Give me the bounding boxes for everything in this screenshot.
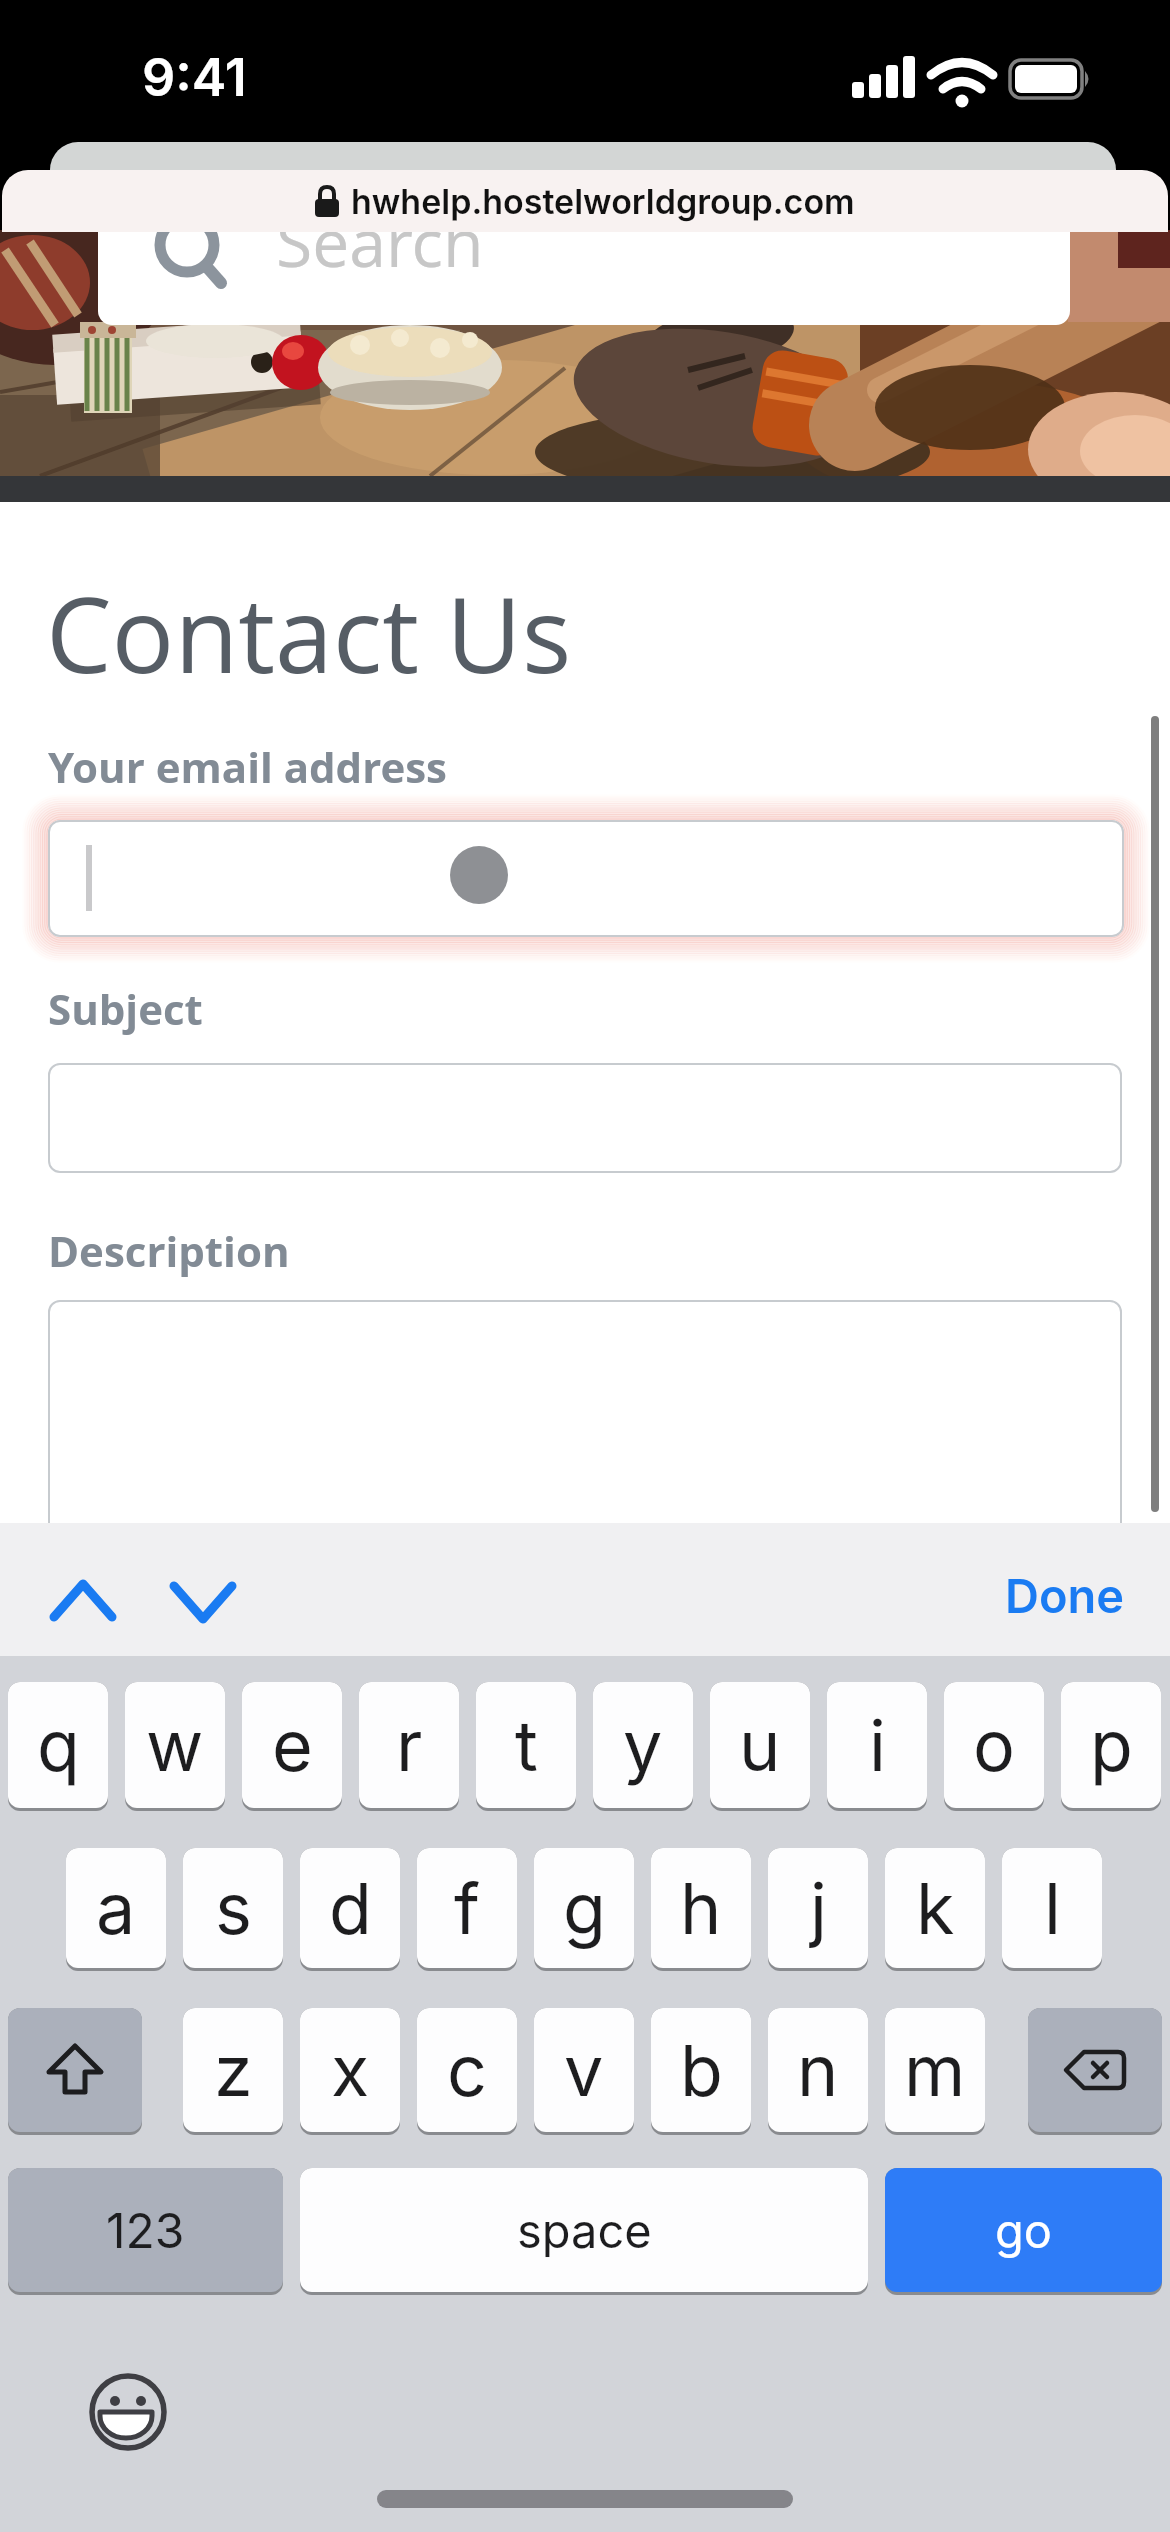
button[interactable]: z	[183, 2008, 283, 2132]
button[interactable]: Done	[990, 1560, 1140, 1630]
staticText: u	[739, 1703, 781, 1788]
staticText: z	[214, 2028, 253, 2113]
button[interactable]: t	[476, 1682, 576, 1808]
button[interactable]: q	[8, 1682, 108, 1808]
button[interactable]	[1028, 2008, 1162, 2132]
staticText: x	[331, 2028, 370, 2113]
staticText: 123	[106, 2201, 185, 2259]
button[interactable]: m	[885, 2008, 985, 2132]
staticText: Your email address	[48, 738, 447, 795]
button[interactable]: k	[885, 1848, 985, 1968]
button[interactable]	[48, 1063, 1122, 1173]
button[interactable]	[80, 2364, 176, 2460]
staticText: i	[869, 1703, 886, 1788]
staticText: r	[396, 1703, 423, 1788]
staticText: c	[447, 2028, 487, 2113]
staticText: y	[623, 1703, 663, 1788]
staticText: f	[454, 1866, 480, 1951]
staticText: o	[973, 1703, 1015, 1788]
staticText: m	[904, 2028, 966, 2113]
staticText: g	[563, 1866, 606, 1951]
staticText: 9:41	[142, 46, 247, 109]
button[interactable]: f	[417, 1848, 517, 1968]
staticText: q	[37, 1703, 80, 1788]
button[interactable]	[48, 820, 1124, 937]
button[interactable]: s	[183, 1848, 283, 1968]
button[interactable]: h	[651, 1848, 751, 1968]
staticText: Search	[276, 196, 484, 286]
button[interactable]	[8, 2008, 142, 2132]
staticText: b	[680, 2028, 723, 2113]
staticText: Description	[48, 1222, 290, 1279]
staticText: v	[564, 2028, 604, 2113]
staticText: n	[797, 2028, 839, 2113]
button[interactable]: u	[710, 1682, 810, 1808]
staticText: p	[1090, 1703, 1133, 1788]
staticText: Subject	[48, 980, 203, 1037]
button[interactable]: x	[300, 2008, 400, 2132]
button[interactable]: i	[827, 1682, 927, 1808]
button[interactable]: 123	[8, 2168, 283, 2292]
staticText: e	[272, 1703, 313, 1788]
staticText: s	[215, 1866, 252, 1951]
staticText: h	[680, 1866, 722, 1951]
staticText: space	[517, 2202, 652, 2259]
button[interactable]: p	[1061, 1682, 1161, 1808]
button[interactable]: y	[593, 1682, 693, 1808]
staticText: j	[810, 1866, 827, 1951]
button[interactable]: c	[417, 2008, 517, 2132]
button[interactable]: n	[768, 2008, 868, 2132]
button[interactable]: o	[944, 1682, 1044, 1808]
button[interactable]: v	[534, 2008, 634, 2132]
button[interactable]: r	[359, 1682, 459, 1808]
staticText: hwhelp.hostelworldgroup.com	[351, 181, 855, 222]
button[interactable]: w	[125, 1682, 225, 1808]
staticText: Contact Us	[46, 562, 572, 704]
button[interactable]	[98, 230, 1070, 325]
staticText: d	[329, 1866, 372, 1951]
staticText: a	[96, 1866, 136, 1951]
button[interactable]: hwhelp.hostelworldgroup.com	[2, 170, 1168, 232]
button[interactable]: go	[885, 2168, 1162, 2292]
button[interactable]: g	[534, 1848, 634, 1968]
button[interactable]: a	[66, 1848, 166, 1968]
button[interactable]: d	[300, 1848, 400, 1968]
button[interactable]: e	[242, 1682, 342, 1808]
staticText: go	[995, 2202, 1053, 2259]
staticText: w	[146, 1703, 204, 1788]
staticText: t	[515, 1703, 538, 1788]
button[interactable]: j	[768, 1848, 868, 1968]
button[interactable]: b	[651, 2008, 751, 2132]
button[interactable]: l	[1002, 1848, 1102, 1968]
staticText: Done	[1005, 1567, 1125, 1624]
staticText: l	[1044, 1866, 1061, 1951]
staticText: k	[916, 1866, 955, 1951]
button[interactable]: space	[300, 2168, 868, 2292]
button[interactable]	[48, 1300, 1122, 1560]
